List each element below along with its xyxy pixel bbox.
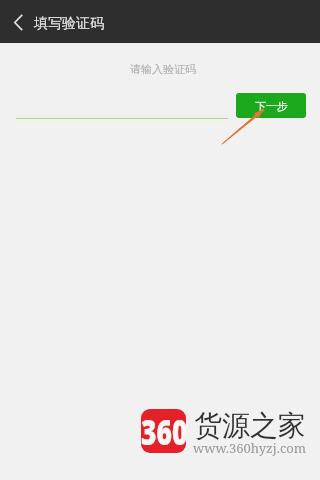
button[interactable]: Verification code input [16,90,228,119]
staticText: 货源之家 [194,408,306,443]
staticText: 下一步 [255,99,288,113]
staticText: 请输入验证码 [130,62,196,76]
button[interactable]: 下一步 [236,93,306,118]
staticText: www.360hyzj.com [193,439,307,457]
button[interactable]: Back [0,0,34,43]
staticText: 填写验证码 [34,15,104,33]
staticText: 360 [141,409,186,453]
